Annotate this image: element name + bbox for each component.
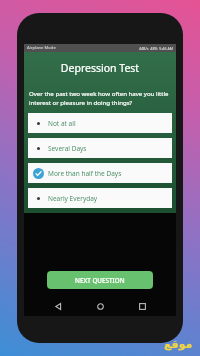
staticText: موقع [164, 338, 193, 351]
button[interactable]: Several Days [28, 138, 172, 158]
button[interactable]: Home [92, 298, 108, 314]
button[interactable]: NEXT QUESTION [47, 271, 153, 289]
button[interactable]: Not at all [28, 113, 172, 133]
button[interactable]: Back [50, 298, 66, 314]
button[interactable]: Recents [134, 298, 150, 314]
staticText: Over the past two week how often have yo… [29, 89, 171, 107]
staticText: NEXT QUESTION [75, 276, 125, 285]
staticText: Not at all [48, 119, 76, 128]
staticText: Airplane Mode [27, 45, 56, 51]
button[interactable]: More than half the Days [28, 163, 172, 183]
staticText: 44B/s 48% 5:46 AM [139, 46, 173, 51]
staticText: More than half the Days [48, 169, 122, 178]
staticText: Several Days [48, 144, 87, 153]
button[interactable]: Nearly Everyday [28, 188, 172, 208]
staticText: Depression Test [24, 61, 176, 75]
staticText: Nearly Everyday [48, 194, 98, 203]
